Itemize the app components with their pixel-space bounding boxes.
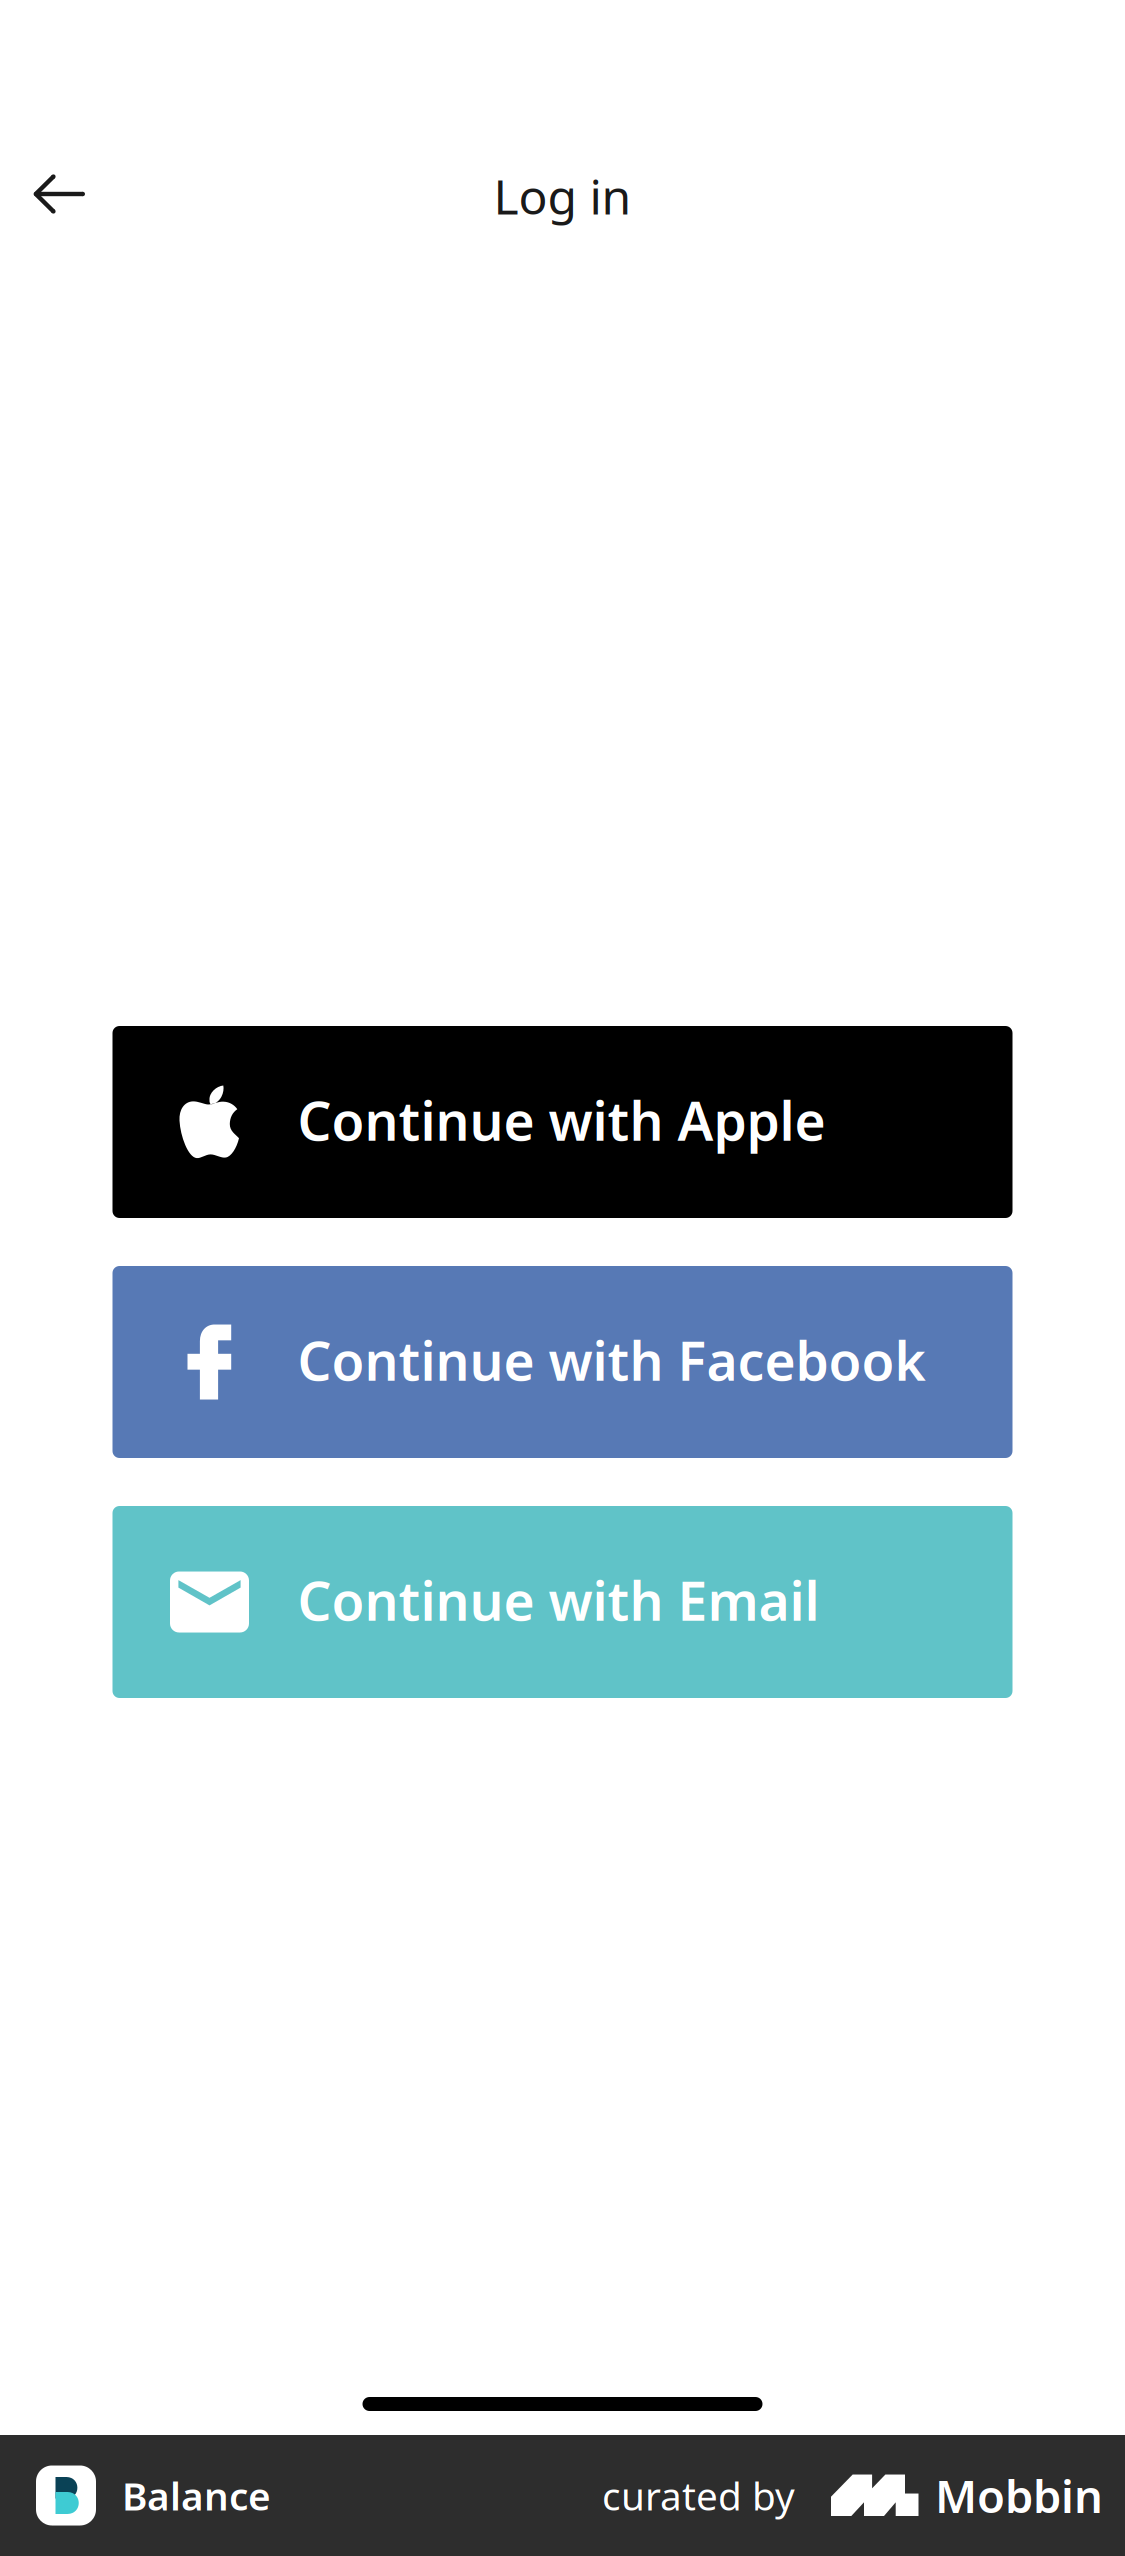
button[interactable]: Continue with Email (112, 1506, 1012, 1698)
staticText: Continue with Email (297, 1565, 819, 1635)
button[interactable]: Back (0, 150, 120, 246)
staticText: curated by (602, 2470, 795, 2521)
staticText: Mobbin (935, 2465, 1103, 2526)
staticText: Balance (122, 2470, 271, 2521)
staticText: Log in (493, 164, 631, 228)
staticText: Continue with Apple (297, 1085, 825, 1155)
button[interactable]: Continue with Apple (112, 1026, 1012, 1218)
staticText: Continue with Facebook (297, 1325, 925, 1395)
button[interactable]: Continue with Facebook (112, 1266, 1012, 1458)
